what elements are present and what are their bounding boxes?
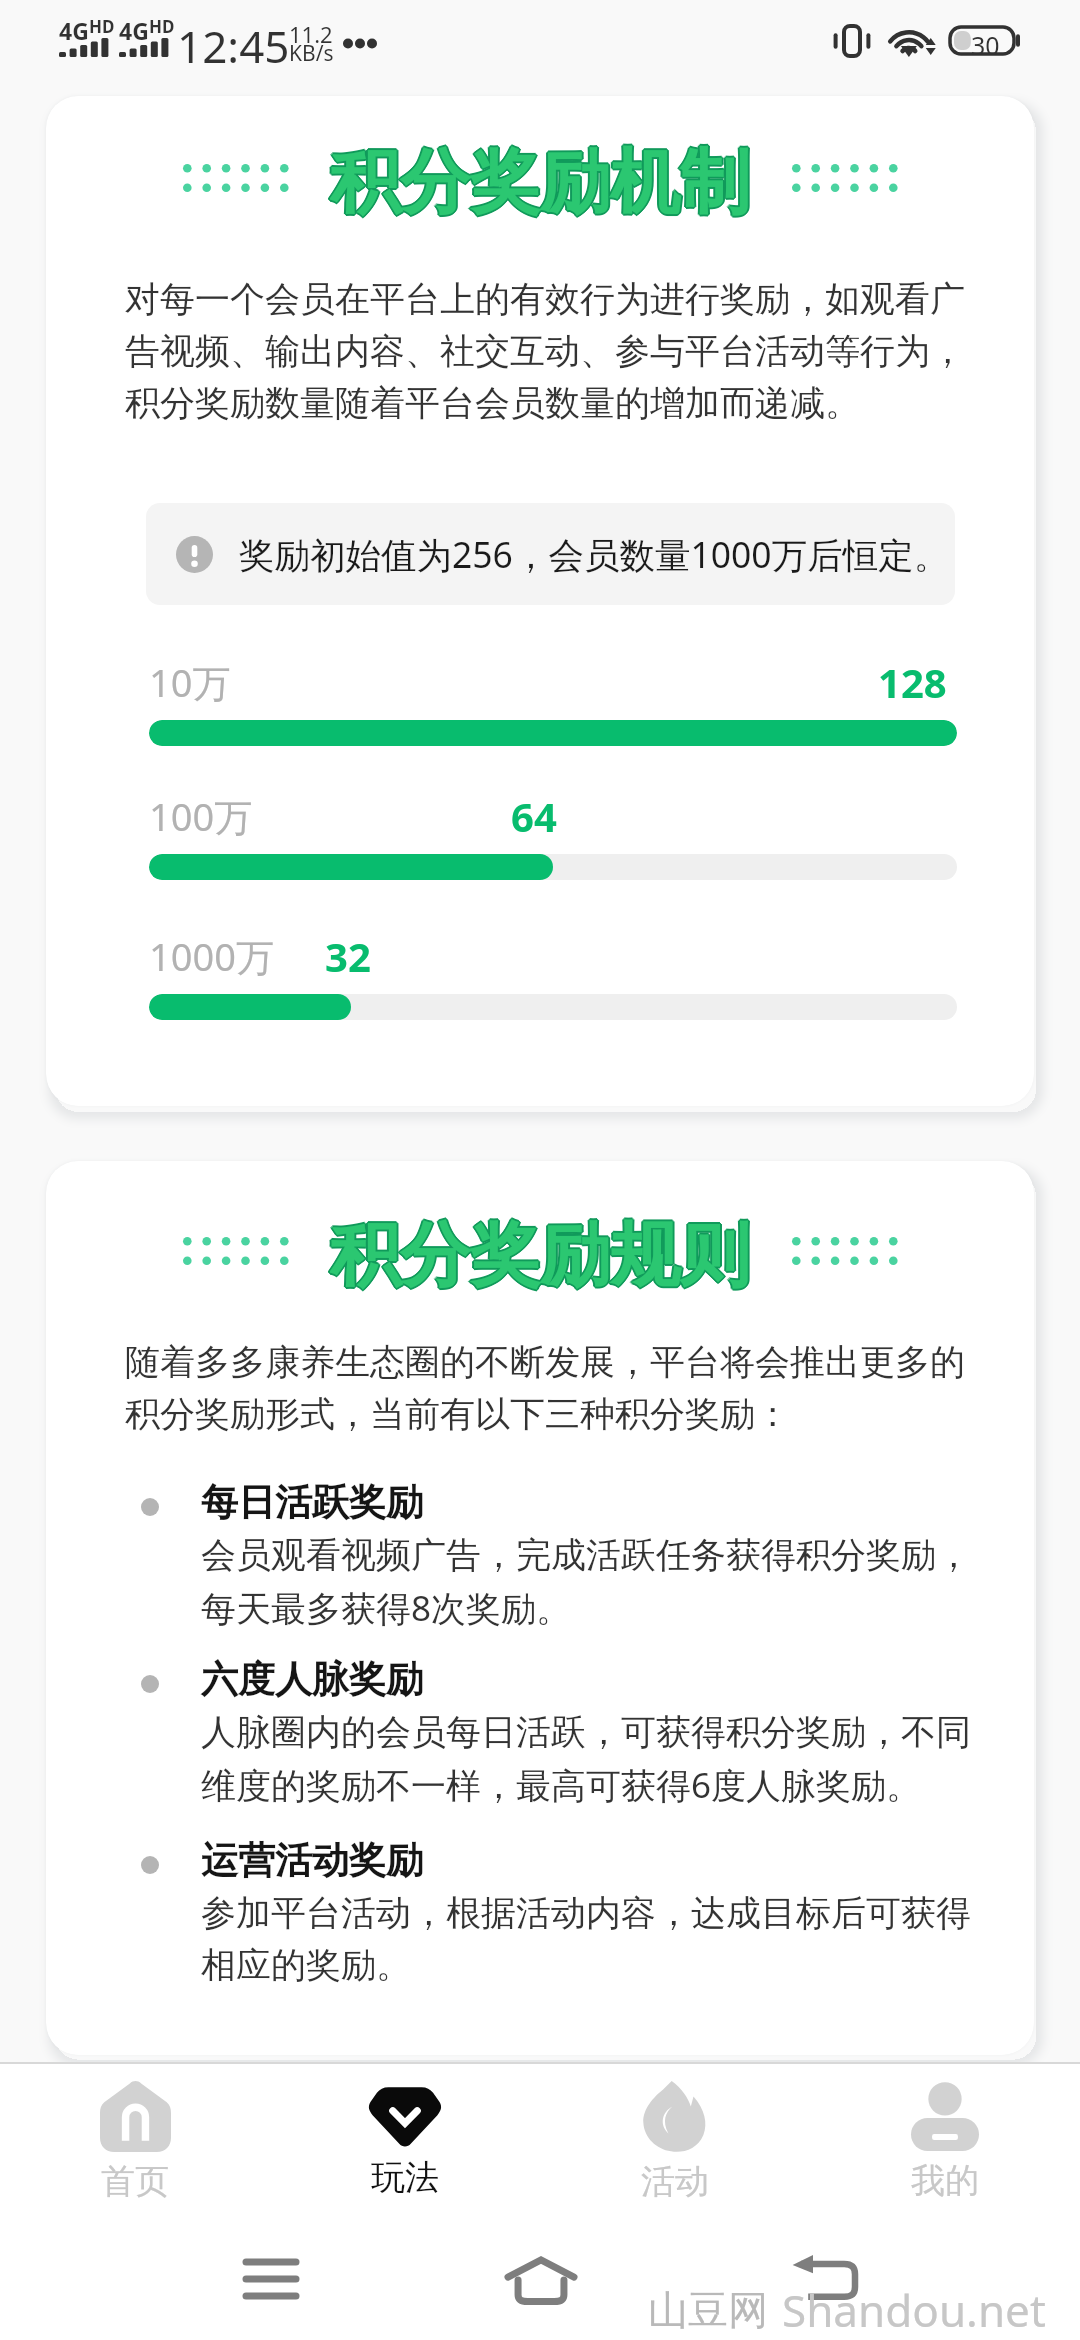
staticText: 11.2 (289, 19, 333, 49)
staticText: 随着多多康养生态圈的不断发展，平台将会推出更多的积分奖励形式，当前有以下三种积分… (125, 1340, 967, 1436)
button[interactable]: 活动 (540, 2064, 810, 2210)
staticText: HD (149, 15, 175, 38)
staticText: 积分奖励机制 (329, 138, 749, 216)
staticText: 活动 (641, 2160, 709, 2203)
staticText: 积分奖励机制 (332, 139, 752, 217)
staticText: 玩法 (371, 2156, 439, 2199)
staticText: 32 (325, 929, 371, 983)
staticText: 10万 (149, 656, 231, 708)
staticText: 1000万 (149, 930, 274, 982)
staticText: KB/s (289, 39, 334, 68)
staticText: 积分奖励机制 (331, 138, 751, 216)
staticText: 4G (59, 15, 89, 46)
button[interactable]: Home (491, 2229, 591, 2329)
staticText: 每日活跃奖励 (201, 1479, 423, 1526)
staticText: 100万 (149, 790, 253, 842)
staticText: 六度人脉奖励 (201, 1656, 423, 1703)
staticText: 积分奖励规则 (330, 1210, 750, 1288)
staticText: 积分奖励规则 (328, 1212, 748, 1290)
staticText: 积分奖励机制 (330, 139, 750, 217)
staticText: 积分奖励机制 (330, 137, 750, 215)
staticText: 山豆网 (648, 2285, 768, 2335)
button[interactable]: 玩法 (270, 2064, 540, 2210)
staticText: 我的 (911, 2159, 979, 2202)
staticText: 30 (971, 28, 1000, 62)
staticText: 积分奖励机制 (329, 140, 749, 218)
staticText: 128 (878, 655, 947, 709)
staticText: 积分奖励规则 (331, 1213, 751, 1291)
staticText: 参加平台活动，根据活动内容，达成目标后可获得相应的奖励。 (201, 1891, 976, 1987)
staticText: 64 (511, 789, 557, 843)
staticText: HD (89, 15, 115, 38)
staticText: 运营活动奖励 (201, 1837, 423, 1884)
staticText: 人脉圈内的会员每日活跃，可获得积分奖励，不同维度的奖励不一样，最高可获得6度人脉… (201, 1710, 976, 1808)
staticText: 12:45 (177, 16, 290, 76)
staticText: 会员观看视频广告，完成活跃任务获得积分奖励，每天最多获得8次奖励。 (201, 1533, 976, 1631)
staticText: 4G (119, 15, 149, 46)
staticText: 积分奖励规则 (329, 1213, 749, 1291)
button[interactable]: Recents (221, 2229, 321, 2329)
staticText: 对每一个会员在平台上的有效行为进行奖励，如观看广告视频、输出内容、社交互动、参与… (125, 277, 967, 425)
staticText: 积分奖励规则 (330, 1212, 750, 1290)
staticText: 积分奖励规则 (331, 1211, 751, 1289)
staticText: 首页 (101, 2160, 169, 2203)
staticText: 积分奖励机制 (330, 141, 750, 219)
staticText: 积分奖励规则 (332, 1212, 752, 1290)
staticText: Shandou.net (782, 2280, 1046, 2340)
staticText: 奖励初始值为256，会员数量1000万后恒定。 (239, 530, 950, 578)
button[interactable]: 首页 (0, 2064, 270, 2210)
staticText: 积分奖励机制 (331, 140, 751, 218)
staticText: 积分奖励规则 (329, 1211, 749, 1289)
staticText: 积分奖励规则 (330, 1214, 750, 1292)
button[interactable]: Back (775, 2227, 875, 2327)
staticText: 积分奖励机制 (328, 139, 748, 217)
button[interactable]: 我的 (810, 2064, 1080, 2210)
